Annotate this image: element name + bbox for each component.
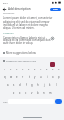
button[interactable]: s	[11, 81, 17, 89]
staticText: 4	[22, 68, 24, 71]
staticText: w	[10, 75, 13, 79]
button[interactable]: u	[38, 73, 44, 81]
staticText: i	[47, 75, 48, 79]
staticText: b	[37, 91, 39, 95]
button[interactable]: 1	[2, 65, 8, 73]
button[interactable]: h	[35, 81, 41, 89]
staticText: f	[26, 83, 27, 87]
staticText: suggestion text appears here	[6, 60, 37, 63]
staticText: 7	[40, 68, 42, 71]
button[interactable]: a	[5, 81, 11, 89]
button[interactable]: j	[41, 81, 47, 89]
button[interactable]: t	[26, 73, 32, 81]
staticText: 3	[16, 68, 18, 71]
button[interactable]: Settings	[49, 35, 55, 41]
staticText: 9:41	[3, 1, 8, 4]
button[interactable]: o	[50, 73, 56, 81]
button[interactable]: c	[23, 89, 29, 97]
button[interactable]: Save	[50, 8, 61, 11]
button[interactable]: e	[14, 73, 20, 81]
button[interactable]: i	[44, 73, 50, 81]
button[interactable]: g	[29, 81, 35, 89]
button[interactable]: 9	[50, 65, 56, 73]
button[interactable]: x	[17, 89, 23, 97]
staticText: t	[29, 75, 30, 79]
staticText: x	[19, 91, 21, 95]
staticText: m	[49, 91, 52, 95]
staticText: o	[52, 75, 54, 79]
staticText: 5	[28, 68, 30, 71]
button[interactable]: 5	[26, 65, 32, 73]
button[interactable]: b	[35, 89, 41, 97]
staticText: Save	[53, 8, 58, 11]
staticText: 1	[4, 68, 6, 71]
staticText: q	[4, 75, 6, 79]
button[interactable]: More suggestions below	[3, 50, 64, 55]
staticText: n	[43, 91, 45, 95]
button[interactable]: r	[20, 73, 26, 81]
staticText: Description	[3, 12, 15, 15]
button[interactable]: v	[29, 89, 35, 97]
button[interactable]: 7	[38, 65, 44, 73]
button[interactable]: q	[2, 73, 8, 81]
button[interactable]: f	[23, 81, 29, 89]
button[interactable]: Enter	[55, 99, 62, 104]
button[interactable]: 0	[56, 65, 62, 73]
button[interactable]: 6	[32, 65, 38, 73]
staticText: s	[13, 83, 15, 87]
staticText: ?123	[3, 101, 8, 104]
button[interactable]: 2	[8, 65, 14, 73]
staticText: k	[49, 83, 51, 87]
staticText: c	[25, 91, 27, 95]
button[interactable]: Symbols	[2, 99, 8, 105]
button[interactable]: n	[41, 89, 47, 97]
staticText: 6	[34, 68, 36, 71]
button[interactable]: 3	[14, 65, 20, 73]
button[interactable]: p	[56, 73, 62, 81]
staticText: l	[56, 83, 57, 87]
staticText: j	[44, 83, 45, 87]
staticText: Lorem ipsum dolor sit amet, consectetur …	[3, 16, 53, 29]
staticText: Suggested	[3, 32, 14, 35]
button[interactable]: d	[17, 81, 23, 89]
staticText: p	[58, 75, 60, 79]
staticText: d	[19, 83, 21, 87]
staticText: r	[22, 75, 24, 79]
staticText: z	[13, 91, 15, 95]
button[interactable]: Back	[1, 6, 8, 13]
button[interactable]: 4	[20, 65, 26, 73]
staticText: y	[34, 75, 36, 79]
staticText: v	[31, 91, 33, 95]
staticText: 2	[10, 68, 12, 71]
button[interactable]: l	[53, 81, 59, 89]
staticText: u	[40, 75, 42, 79]
staticText: h	[37, 83, 39, 87]
staticText: e	[16, 75, 18, 79]
button[interactable]: m	[47, 89, 53, 97]
staticText: 8	[46, 68, 48, 71]
button[interactable]: k	[47, 81, 53, 89]
staticText: 9	[52, 68, 54, 71]
button[interactable]: 8	[44, 65, 50, 73]
staticText: Consectetur ullamco laboris nisi ut aliq…	[3, 36, 53, 45]
button[interactable]: y	[32, 73, 38, 81]
button[interactable]: z	[11, 89, 17, 97]
staticText: 0	[58, 68, 60, 71]
staticText: g	[31, 83, 33, 87]
button[interactable]: Sticker	[50, 62, 55, 67]
staticText: More suggestions below	[6, 51, 36, 55]
staticText: Add description	[8, 7, 31, 11]
button[interactable]: w	[8, 73, 14, 81]
staticText: a	[7, 83, 9, 87]
